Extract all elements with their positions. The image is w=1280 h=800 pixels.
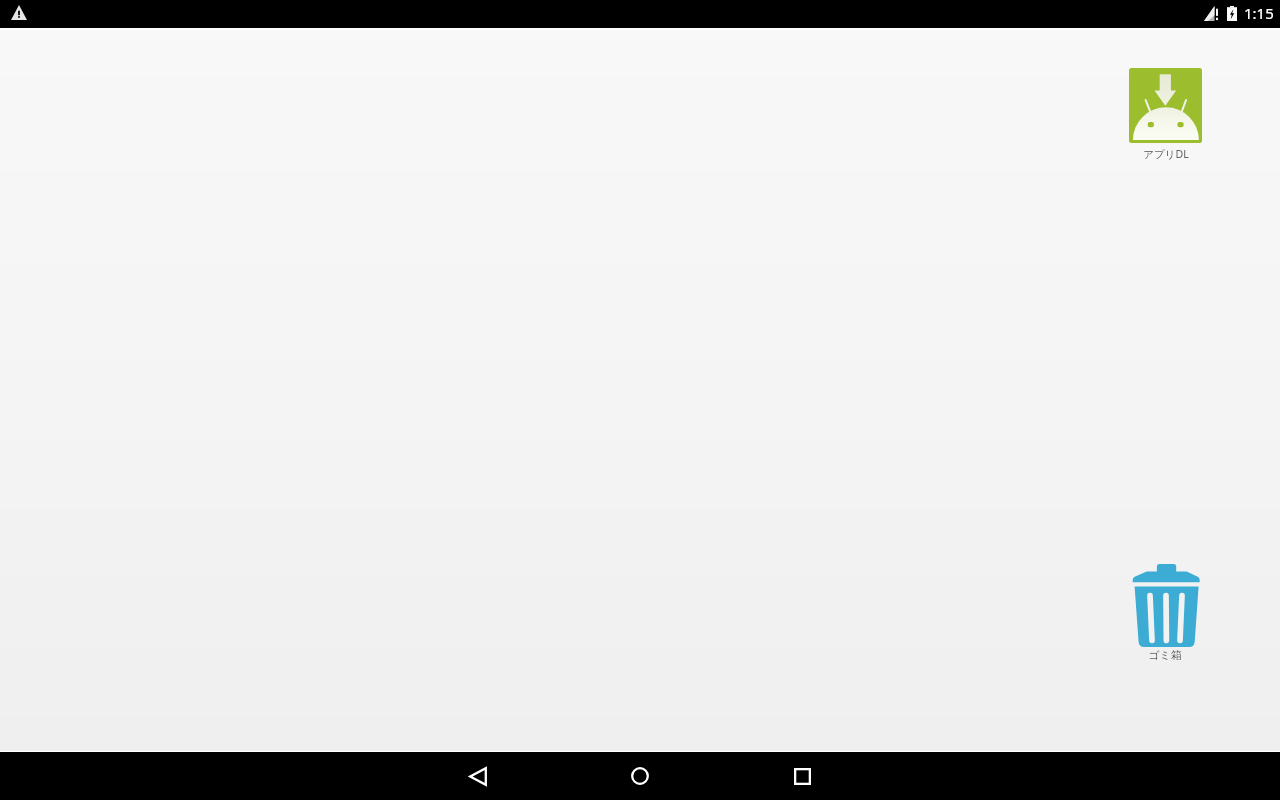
button[interactable]: Recent apps (762, 752, 842, 800)
button[interactable]: ゴミ箱 (1131, 563, 1199, 662)
button[interactable]: アプリDL (1129, 68, 1202, 161)
button[interactable]: Back (438, 752, 518, 800)
staticText: 1:15 (1244, 3, 1274, 23)
staticText: ゴミ箱 (1148, 648, 1182, 662)
staticText: アプリDL (1143, 147, 1189, 161)
button[interactable]: Home (600, 752, 680, 800)
